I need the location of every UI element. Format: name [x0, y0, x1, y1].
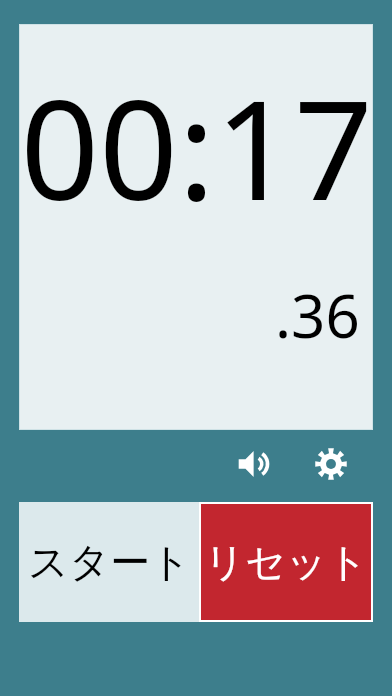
button[interactable]: スタート	[19, 502, 199, 622]
staticText: 00:17	[20, 52, 373, 240]
staticText: .36	[275, 274, 360, 356]
staticText: リセット	[204, 537, 368, 587]
staticText: スタート	[28, 537, 191, 587]
button[interactable]: Settings	[304, 437, 358, 491]
button[interactable]: リセット	[201, 504, 371, 620]
button[interactable]: Sound	[228, 437, 282, 491]
